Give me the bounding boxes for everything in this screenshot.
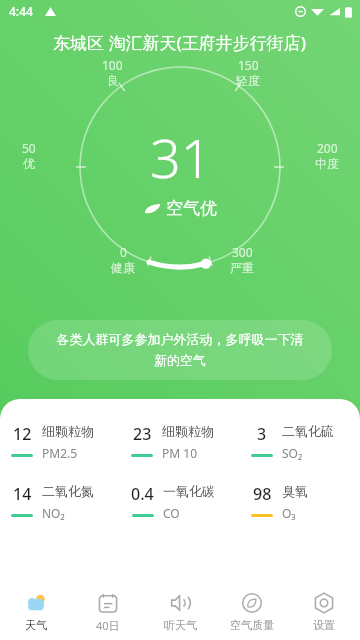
staticText: 天气: [25, 618, 47, 632]
staticText: 一氧化碳: [163, 483, 215, 499]
staticText: 0: [120, 244, 127, 260]
staticText: PM2.5: [42, 445, 78, 461]
staticText: 23: [133, 423, 152, 445]
staticText: 各类人群可多参加户外活动，多呼吸一下清新的空气: [52, 331, 308, 369]
staticText: 臭氧: [282, 483, 308, 499]
staticText: 优: [23, 156, 35, 171]
button[interactable]: 98: [240, 483, 360, 521]
staticText: 50: [22, 140, 36, 156]
staticText: 二氧化氮: [42, 483, 94, 499]
staticText: 14: [13, 483, 32, 505]
staticText: 200: [317, 140, 338, 156]
staticText: 轻度: [236, 73, 260, 88]
staticText: 150: [238, 57, 259, 73]
staticText: 中度: [315, 156, 339, 171]
button[interactable]: 12: [0, 423, 120, 461]
button[interactable]: 3: [240, 423, 360, 461]
staticText: 细颗粒物: [42, 423, 94, 439]
staticText: 设置: [313, 618, 335, 632]
staticText: 空气质量: [230, 618, 274, 632]
staticText: O₃: [282, 505, 296, 521]
staticText: 4:44: [9, 3, 33, 19]
staticText: 良: [107, 73, 119, 88]
staticText: 二氧化硫: [282, 423, 334, 439]
staticText: 0.4: [131, 483, 154, 505]
button[interactable]: 0.4: [120, 483, 240, 521]
staticText: NO₂: [42, 505, 65, 521]
staticText: 空气优: [166, 198, 217, 219]
staticText: 细颗粒物: [162, 423, 214, 439]
button[interactable]: 天气: [0, 584, 72, 640]
button[interactable]: 各类人群可多参加户外活动，多呼吸一下清新的空气: [28, 320, 332, 380]
staticText: 40日: [96, 618, 120, 633]
staticText: PM 10: [162, 445, 197, 461]
button[interactable]: 空气质量: [216, 584, 288, 640]
button[interactable]: 14: [0, 483, 120, 521]
button[interactable]: 设置: [288, 584, 360, 640]
staticText: 健康: [111, 260, 135, 275]
button[interactable]: 听天气: [144, 584, 216, 640]
staticText: 3: [257, 423, 267, 445]
staticText: 东城区 淘汇新天(王府井步行街店): [53, 31, 307, 54]
button[interactable]: 23: [120, 423, 240, 461]
staticText: SO₂: [282, 445, 303, 461]
button[interactable]: 40日: [72, 584, 144, 640]
staticText: 听天气: [164, 618, 197, 632]
staticText: 12: [13, 423, 32, 445]
staticText: 100: [102, 57, 123, 73]
staticText: 300: [232, 244, 253, 260]
staticText: 31: [150, 120, 212, 194]
staticText: 严重: [230, 260, 254, 275]
staticText: 98: [253, 483, 272, 505]
staticText: CO: [163, 505, 180, 521]
